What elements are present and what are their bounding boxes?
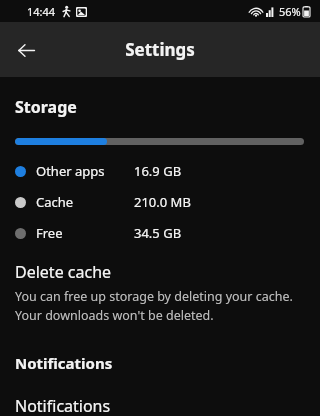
button[interactable]: Back (8, 32, 44, 68)
staticText: Free (36, 224, 134, 242)
button[interactable]: Delete cache (0, 261, 320, 326)
staticText: 16.9 GB (134, 162, 182, 180)
button[interactable]: Other apps (0, 160, 320, 182)
staticText: Your downloads won't be deleted. (15, 307, 214, 324)
staticText: 210.0 MB (134, 193, 191, 211)
staticText: Other apps (36, 162, 134, 180)
staticText: Notifications (15, 353, 113, 373)
staticText: 14:44 (27, 4, 56, 19)
staticText: Cache (36, 193, 134, 211)
button[interactable]: Cache (0, 191, 320, 213)
staticText: 56% (279, 4, 301, 19)
button[interactable]: Free (0, 222, 320, 244)
staticText: Settings (125, 38, 195, 61)
staticText: Delete cache (15, 261, 112, 283)
staticText: Notifications (15, 395, 111, 416)
staticText: Storage (15, 96, 77, 118)
button[interactable]: Notifications (0, 395, 320, 416)
staticText: You can free up storage by deleting your… (15, 288, 293, 305)
staticText: 34.5 GB (134, 224, 182, 242)
